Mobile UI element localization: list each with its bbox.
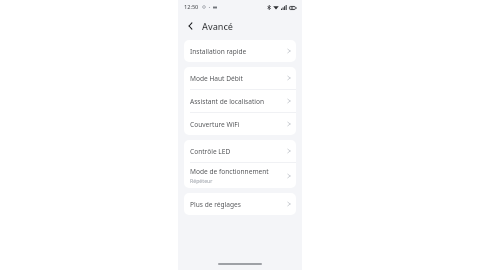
button[interactable]: Installation rapide	[184, 40, 296, 62]
staticText: Mode de fonctionnement	[190, 167, 269, 176]
staticText: Mode Haut Débit	[190, 74, 243, 83]
button[interactable]: Back	[183, 19, 197, 33]
staticText: Installation rapide	[190, 47, 247, 56]
staticText: Répéteur	[190, 177, 213, 184]
button[interactable]: Mode Haut Débit	[184, 67, 296, 89]
button[interactable]: Couverture WiFi	[184, 113, 296, 135]
staticText: 12:50	[184, 3, 199, 11]
button[interactable]: Plus de réglages	[184, 193, 296, 215]
button[interactable]: Contrôle LED	[184, 140, 296, 162]
staticText: Assistant de localisation	[190, 97, 265, 106]
button[interactable]: Assistant de localisation	[184, 90, 296, 112]
staticText: Plus de réglages	[190, 200, 241, 209]
button[interactable]: Mode de fonctionnement	[184, 163, 296, 188]
staticText: Couverture WiFi	[190, 120, 240, 129]
staticText: Avancé	[202, 20, 234, 32]
staticText: Contrôle LED	[190, 147, 231, 156]
